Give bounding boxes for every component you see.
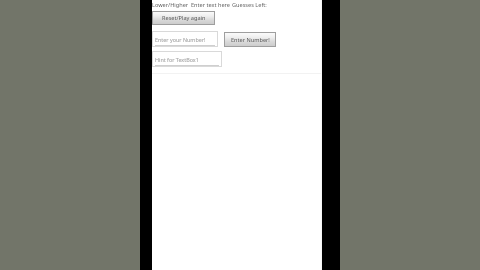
button[interactable]: Guesses Left: <box>232 1 267 9</box>
button[interactable]: Reset/Play again <box>152 11 215 25</box>
staticText: Enter your Number! <box>155 36 206 43</box>
button[interactable]: Hint for TextBox1 <box>152 51 222 67</box>
button[interactable]: Enter your Number! <box>152 31 218 47</box>
staticText: Enter Number! <box>231 36 270 44</box>
button[interactable]: Enter text here <box>191 1 230 9</box>
button[interactable]: Lower/Higher <box>152 1 189 9</box>
button[interactable]: Enter Number! <box>224 32 276 47</box>
staticText: Reset/Play again <box>162 14 206 22</box>
staticText: Hint for TextBox1 <box>155 56 199 63</box>
